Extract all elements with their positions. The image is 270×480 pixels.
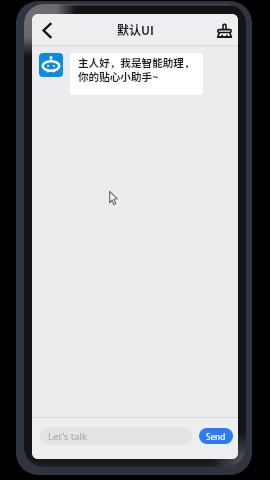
staticText: Let's talk — [48, 430, 88, 443]
button[interactable]: Back — [34, 17, 60, 43]
button[interactable]: Send — [199, 428, 233, 444]
staticText: Send — [206, 431, 226, 442]
staticText: 默认UI — [117, 21, 154, 38]
button[interactable]: Assistant avatar — [39, 53, 63, 77]
button[interactable]: Clear — [211, 17, 237, 43]
button[interactable]: Let's talk — [40, 427, 192, 445]
button[interactable]: 主人好，我是智能助理， 你的贴心小助手~ — [70, 53, 203, 95]
staticText: 主人好，我是智能助理， 你的贴心小助手~ — [78, 55, 195, 84]
